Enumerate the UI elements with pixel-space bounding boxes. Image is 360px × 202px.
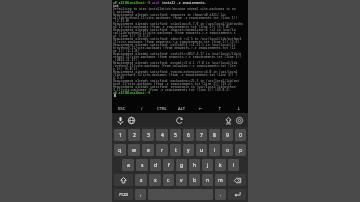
button[interactable]: / — [132, 104, 152, 113]
staticText: 3.11/site-packages (from -r requirements… — [113, 88, 230, 91]
button[interactable]: 7 — [196, 129, 207, 141]
button[interactable]: 9 — [222, 129, 233, 141]
staticText: w — [132, 147, 136, 154]
staticText: ↑ — [218, 106, 222, 111]
button[interactable]: Settings — [235, 116, 244, 125]
button[interactable]: ↑ — [210, 104, 229, 113]
staticText: ne 1)) (2.1.0) — [113, 49, 139, 52]
staticText: l — [233, 162, 235, 169]
staticText: 4 — [161, 132, 164, 139]
button[interactable]: q — [114, 144, 126, 156]
staticText: v — [180, 177, 183, 184]
button[interactable]: i — [209, 144, 220, 156]
button[interactable]: Shift — [114, 174, 133, 186]
button[interactable]: 4 — [156, 129, 168, 141]
button[interactable]: ?123 — [114, 189, 133, 200]
button[interactable]: 2 — [128, 129, 140, 141]
staticText: , — [140, 191, 142, 198]
staticText: a — [127, 162, 130, 169]
button[interactable]: 0 — [235, 129, 246, 141]
button[interactable]: f — [163, 159, 174, 171]
staticText: /python3.11/site-packages (from colorlog… — [113, 64, 236, 67]
button[interactable]: 5 — [170, 129, 181, 141]
staticText: Requirement already satisfied: pyyaml>=5… — [113, 61, 238, 64]
staticText: b/python3.11/site-packages (from request… — [113, 46, 236, 49]
button[interactable]: o — [222, 144, 233, 156]
button[interactable]: d — [150, 159, 161, 171]
staticText: install -r requirements. — [162, 1, 207, 4]
button[interactable]: Keyboard settings — [224, 116, 233, 125]
button[interactable]: j — [202, 159, 213, 171]
staticText: q — [118, 147, 122, 154]
staticText: ALT — [178, 106, 186, 112]
button[interactable]: a — [122, 159, 134, 171]
staticText: ?123 — [119, 192, 129, 198]
staticText: 11/site-packages (from requests->-r requ… — [113, 40, 240, 43]
button[interactable]: x — [149, 174, 161, 186]
button[interactable]: Backspace — [228, 174, 246, 186]
staticText: y — [187, 147, 190, 154]
staticText: Requirement already satisfied: packaging… — [113, 79, 240, 82]
staticText: 8 — [213, 132, 216, 139]
staticText: b — [193, 177, 197, 184]
staticText: 1 — [119, 132, 122, 139]
button[interactable]: Voice input — [116, 116, 125, 125]
button[interactable]: u0_a321@localhost:~$ — [112, 0, 248, 104]
staticText: x — [154, 177, 157, 184]
staticText: xt (line 1)) (3.3.2) — [113, 34, 151, 37]
button[interactable]: ESC — [112, 104, 132, 113]
button[interactable]: 6 — [183, 129, 194, 141]
button[interactable]: l — [228, 159, 239, 171]
button[interactable]: 1 — [114, 129, 126, 141]
button[interactable]: t — [170, 144, 181, 156]
button[interactable]: h — [189, 159, 200, 171]
button[interactable]: u — [196, 144, 207, 156]
button[interactable]: ALT — [172, 104, 191, 113]
button[interactable]: 8 — [209, 129, 220, 141]
button[interactable]: CTRL — [152, 104, 172, 113]
staticText: ← — [199, 106, 203, 111]
button[interactable]: m — [215, 174, 226, 186]
staticText: s — [141, 162, 144, 169]
button[interactable]: z — [135, 174, 147, 186]
button[interactable]: Enter — [228, 189, 246, 200]
button[interactable]: y — [183, 144, 194, 156]
button[interactable]: e — [142, 144, 154, 156]
button[interactable]: Change language — [127, 116, 136, 125]
staticText: /lib/python3.11/site-packages (from -r r… — [113, 73, 238, 76]
button[interactable]: k — [215, 159, 226, 171]
button[interactable]: s — [136, 159, 148, 171]
staticText: 5 — [174, 132, 177, 139]
staticText: j — [207, 162, 209, 169]
staticText: 4.9.0) — [113, 76, 125, 79]
staticText: t writeable — [113, 10, 134, 13]
staticText: ↓ — [237, 106, 241, 111]
button[interactable]: 3 — [142, 129, 154, 141]
staticText: c — [167, 177, 170, 184]
staticText: f — [168, 162, 170, 169]
button[interactable]: , — [135, 189, 146, 200]
button[interactable]: r — [156, 144, 168, 156]
staticText: p — [239, 147, 243, 154]
staticText: 9 — [226, 132, 229, 139]
staticText: CTRL — [157, 106, 167, 112]
button[interactable]: g — [176, 159, 187, 171]
staticText: 6 — [187, 132, 190, 139]
button[interactable]: v — [176, 174, 187, 186]
button[interactable]: ↓ — [229, 104, 248, 113]
staticText: Defaulting to user installation because … — [113, 7, 236, 10]
staticText: (2.31.0) — [113, 19, 130, 22]
button[interactable]: w — [128, 144, 140, 156]
staticText: Requirement already satisfied: charset-n… — [113, 28, 236, 31]
button[interactable]: n — [202, 174, 213, 186]
button[interactable]: b — [189, 174, 200, 186]
button[interactable]: Paste — [175, 116, 184, 125]
button[interactable]: . — [215, 189, 226, 200]
button[interactable]: c — [163, 174, 174, 186]
staticText: Requirement already satisfied: idna<4,>=… — [113, 37, 243, 40]
button[interactable]: p — [235, 144, 246, 156]
staticText: 0 — [239, 132, 242, 139]
button[interactable]: ← — [191, 104, 210, 113]
staticText: n3.11/site-packages (from -r requirement… — [113, 25, 230, 28]
